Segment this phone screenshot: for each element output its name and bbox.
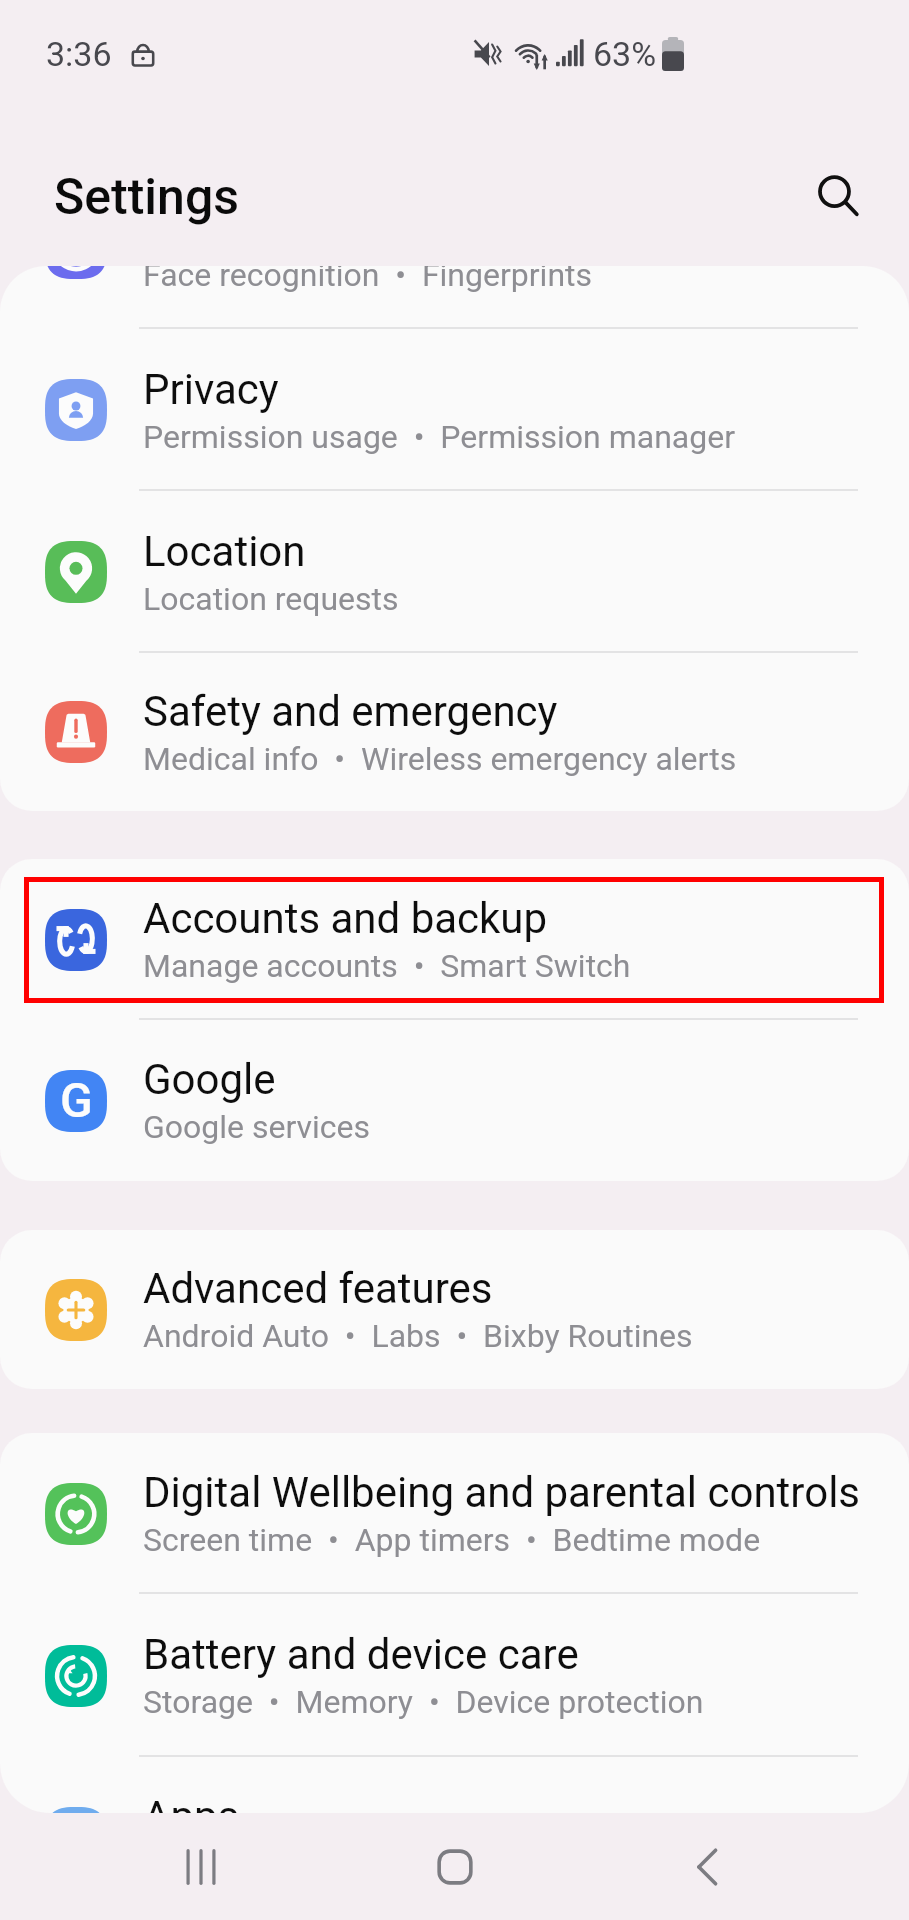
staticText: Location (143, 527, 306, 576)
button[interactable]: Advanced features (0, 1230, 909, 1389)
button[interactable]: Accounts and backup (0, 859, 909, 1020)
button[interactable]: Back (656, 1815, 760, 1919)
staticText: 63% (593, 34, 657, 74)
staticText: Privacy (143, 365, 279, 414)
button[interactable]: Apps (0, 1757, 909, 1813)
staticText: Storage • Memory • Device protection (143, 1683, 704, 1721)
staticText: Manage accounts • Smart Switch (143, 947, 631, 985)
staticText: Digital Wellbeing and parental controls (143, 1468, 861, 1517)
button[interactable]: Digital Wellbeing and parental controls (0, 1433, 909, 1594)
staticText: 3:36 (46, 34, 112, 74)
button[interactable]: G (0, 1020, 909, 1181)
staticText: G (60, 1072, 93, 1128)
button[interactable]: Search (799, 157, 881, 239)
staticText: Advanced features (143, 1264, 493, 1313)
button[interactable]: Safety and emergency (0, 653, 909, 811)
staticText: Face recognition • Fingerprints (143, 266, 593, 294)
staticText: Apps (143, 1792, 240, 1813)
staticText: Android Auto • Labs • Bixby Routines (143, 1317, 693, 1355)
staticText: Medical info • Wireless emergency alerts (143, 740, 737, 778)
staticText: Google (143, 1055, 276, 1104)
button[interactable]: Biometrics and security (0, 266, 909, 329)
button[interactable]: Location (0, 491, 909, 653)
staticText: Settings (54, 168, 240, 227)
staticText: Location requests (143, 580, 399, 618)
staticText: Google services (143, 1108, 371, 1146)
staticText: Battery and device care (143, 1630, 579, 1679)
button[interactable]: Privacy (0, 329, 909, 491)
staticText: Safety and emergency (143, 687, 558, 736)
staticText: Permission usage • Permission manager (143, 418, 735, 456)
staticText: Accounts and backup (143, 894, 548, 943)
staticText: Screen time • App timers • Bedtime mode (143, 1521, 761, 1559)
button[interactable]: Battery and device care (0, 1594, 909, 1757)
button[interactable]: Recents (149, 1815, 253, 1919)
button[interactable]: Home (403, 1815, 507, 1919)
